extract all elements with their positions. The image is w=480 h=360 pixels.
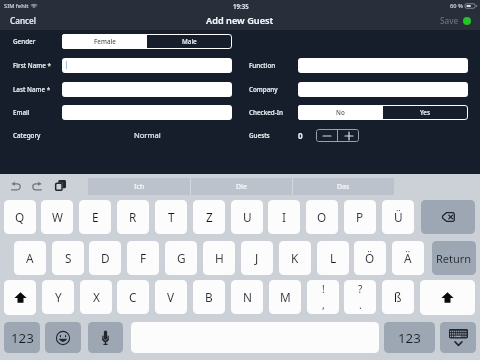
button[interactable]: ! [307, 280, 339, 314]
button[interactable]: Male [147, 34, 232, 49]
button[interactable]: Female [62, 34, 147, 49]
button[interactable]: Shift [4, 280, 36, 315]
staticText: . [359, 298, 362, 312]
staticText: U [243, 209, 252, 225]
staticText: C [129, 289, 137, 305]
button[interactable]: P [344, 200, 376, 234]
staticText: Function [249, 61, 276, 70]
button[interactable]: L [317, 241, 349, 275]
button[interactable]: Ich [88, 178, 190, 195]
button[interactable]: A [14, 241, 46, 275]
staticText: Z [206, 209, 213, 225]
button[interactable]: Shift [420, 280, 475, 315]
staticText: Cancel [10, 15, 36, 26]
staticText: Die [236, 182, 248, 192]
staticText: ! [322, 282, 325, 296]
button[interactable]: G [165, 241, 197, 275]
button[interactable]: Y [42, 280, 74, 314]
button[interactable]: U [231, 200, 263, 234]
staticText: 0 [298, 130, 303, 141]
button[interactable]: N [231, 280, 263, 314]
staticText: First Name * [13, 61, 51, 70]
staticText: 123 [398, 329, 421, 347]
button[interactable]: Decrease [316, 129, 337, 142]
staticText: Save [440, 15, 459, 26]
button[interactable]: Ü [382, 200, 414, 234]
button[interactable]: Paste [55, 180, 66, 191]
button[interactable]: Q [4, 200, 36, 234]
button[interactable]: S [52, 241, 84, 275]
button[interactable]: H [203, 241, 235, 275]
button[interactable]: No [298, 105, 383, 120]
staticText: 123 [11, 329, 34, 347]
button[interactable] [62, 82, 232, 97]
staticText: P [356, 209, 364, 225]
button[interactable]: Undo [11, 181, 21, 191]
staticText: M [280, 289, 291, 305]
button[interactable]: Increase [338, 129, 359, 142]
staticText: F [140, 250, 147, 266]
staticText: ß [394, 289, 402, 305]
staticText: W [52, 209, 63, 225]
button[interactable]: Yes [383, 105, 468, 120]
staticText: ? [358, 282, 363, 296]
button[interactable] [298, 58, 468, 73]
button[interactable] [298, 82, 468, 97]
staticText: Return [436, 251, 472, 266]
button[interactable] [62, 58, 232, 73]
staticText: R [129, 209, 137, 225]
button[interactable]: X [80, 280, 112, 314]
button[interactable]: ? [344, 280, 376, 314]
button[interactable]: B [193, 280, 225, 314]
staticText: J [255, 250, 259, 266]
button[interactable]: 123 [384, 322, 435, 353]
button[interactable]: Cancel [0, 13, 46, 28]
button[interactable]: F [127, 241, 159, 275]
button[interactable]: Return [432, 241, 476, 275]
button[interactable]: M [269, 280, 301, 314]
button[interactable]: R [117, 200, 149, 234]
button[interactable]: O [306, 200, 338, 234]
staticText: No [336, 108, 345, 117]
button[interactable]: Ö [354, 241, 386, 275]
staticText: A [26, 250, 34, 266]
button[interactable]: Save [430, 13, 480, 28]
staticText: Email [13, 108, 30, 117]
staticText: D [101, 250, 110, 266]
button[interactable]: Normal [127, 127, 168, 143]
button[interactable]: Dictate [88, 322, 123, 353]
button[interactable]: 123 [4, 322, 40, 353]
staticText: K [291, 250, 299, 266]
staticText: Normal [134, 130, 161, 140]
button[interactable]: Hide keyboard [440, 322, 476, 353]
button[interactable]: K [279, 241, 311, 275]
staticText: Male [182, 37, 197, 46]
button[interactable]: Die [191, 178, 292, 195]
button[interactable] [62, 105, 232, 120]
button[interactable]: V [155, 280, 187, 314]
button[interactable]: E [79, 200, 111, 234]
staticText: T [168, 209, 175, 225]
button[interactable]: Backspace [421, 200, 475, 234]
button[interactable]: C [117, 280, 149, 314]
button[interactable]: D [89, 241, 121, 275]
staticText: Yes [420, 108, 431, 117]
staticText: Q [15, 209, 25, 225]
staticText: SIM fehlt [4, 2, 29, 10]
staticText: Y [55, 289, 62, 305]
button[interactable]: Emoji [45, 322, 81, 353]
button[interactable]: Das [293, 178, 394, 195]
button[interactable]: J [241, 241, 273, 275]
button[interactable]: I [268, 200, 300, 234]
button[interactable]: Ä [392, 241, 424, 275]
staticText: S [65, 250, 72, 266]
staticText: E [92, 209, 99, 225]
button[interactable]: T [155, 200, 187, 234]
button[interactable]: Redo [32, 181, 42, 191]
staticText: O [317, 209, 327, 225]
button[interactable]: Z [193, 200, 225, 234]
button[interactable]: W [41, 200, 73, 234]
staticText: 60 % [450, 2, 463, 10]
button[interactable]: ß [382, 280, 414, 314]
